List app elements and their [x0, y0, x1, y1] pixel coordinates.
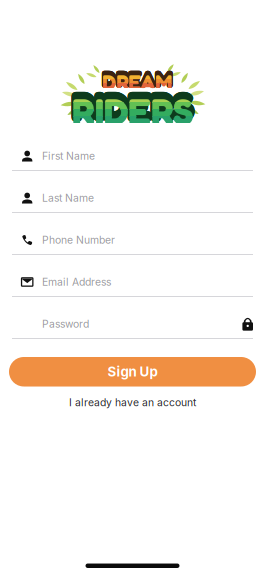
staticText: DREAM [102, 65, 172, 90]
staticText: DREAM [102, 65, 172, 90]
staticText: RIDERS [74, 83, 195, 128]
staticText: Password [42, 318, 89, 330]
staticText: DREAM [102, 66, 172, 91]
staticText: First Name [42, 150, 95, 162]
staticText: DREAM [101, 66, 171, 91]
button[interactable]: Email Address [12, 255, 253, 297]
staticText: DREAM [102, 68, 172, 93]
staticText: RIDERS [73, 82, 194, 127]
staticText: Sign Up [107, 364, 157, 380]
staticText: RIDERS [71, 82, 192, 127]
staticText: Phone Number [42, 234, 115, 246]
staticText: DREAM [102, 70, 172, 95]
staticText: RIDERS [74, 84, 195, 129]
staticText: DREAM [104, 67, 174, 92]
button[interactable]: I already have an account [69, 394, 196, 410]
staticText: RIDERS [72, 85, 193, 131]
staticText: RIDERS [70, 84, 191, 129]
staticText: RIDERS [72, 89, 193, 134]
staticText: RIDERS [72, 89, 193, 134]
staticText: DREAM [104, 66, 174, 91]
staticText: I already have an account [69, 396, 196, 409]
staticText: DREAM [103, 65, 173, 90]
button[interactable]: Sign Up [9, 357, 256, 386]
staticText: RIDERS [71, 85, 192, 130]
staticText: RIDERS [71, 85, 192, 130]
staticText: DREAM [102, 70, 172, 95]
staticText: Last Name [42, 192, 94, 204]
staticText: RIDERS [72, 81, 193, 127]
staticText: RIDERS [74, 83, 195, 129]
staticText: DREAM [103, 68, 173, 93]
staticText: RIDERS [71, 82, 192, 127]
button[interactable]: Phone Number [12, 213, 253, 255]
staticText: DREAM [102, 70, 172, 95]
staticText: RIDERS [73, 82, 194, 127]
staticText: RIDERS [72, 89, 193, 134]
button[interactable]: First Name [12, 129, 253, 171]
staticText: RIDERS [73, 85, 194, 130]
staticText: DREAM [102, 70, 172, 95]
staticText: RIDERS [70, 83, 191, 128]
button[interactable]: Last Name [12, 171, 253, 213]
staticText: RIDERS [72, 89, 193, 134]
staticText: DREAM [101, 66, 171, 91]
staticText: DREAM [101, 67, 171, 92]
button[interactable]: Password [12, 297, 253, 339]
staticText: RIDERS [70, 83, 191, 129]
staticText: DREAM [103, 66, 173, 91]
staticText: DREAM [102, 68, 172, 93]
staticText: DREAM [103, 67, 173, 92]
staticText: RIDERS [72, 89, 193, 134]
staticText: RIDERS [73, 85, 194, 130]
staticText: Email Address [42, 276, 111, 288]
staticText: DREAM [104, 66, 174, 91]
staticText: DREAM [102, 67, 172, 92]
